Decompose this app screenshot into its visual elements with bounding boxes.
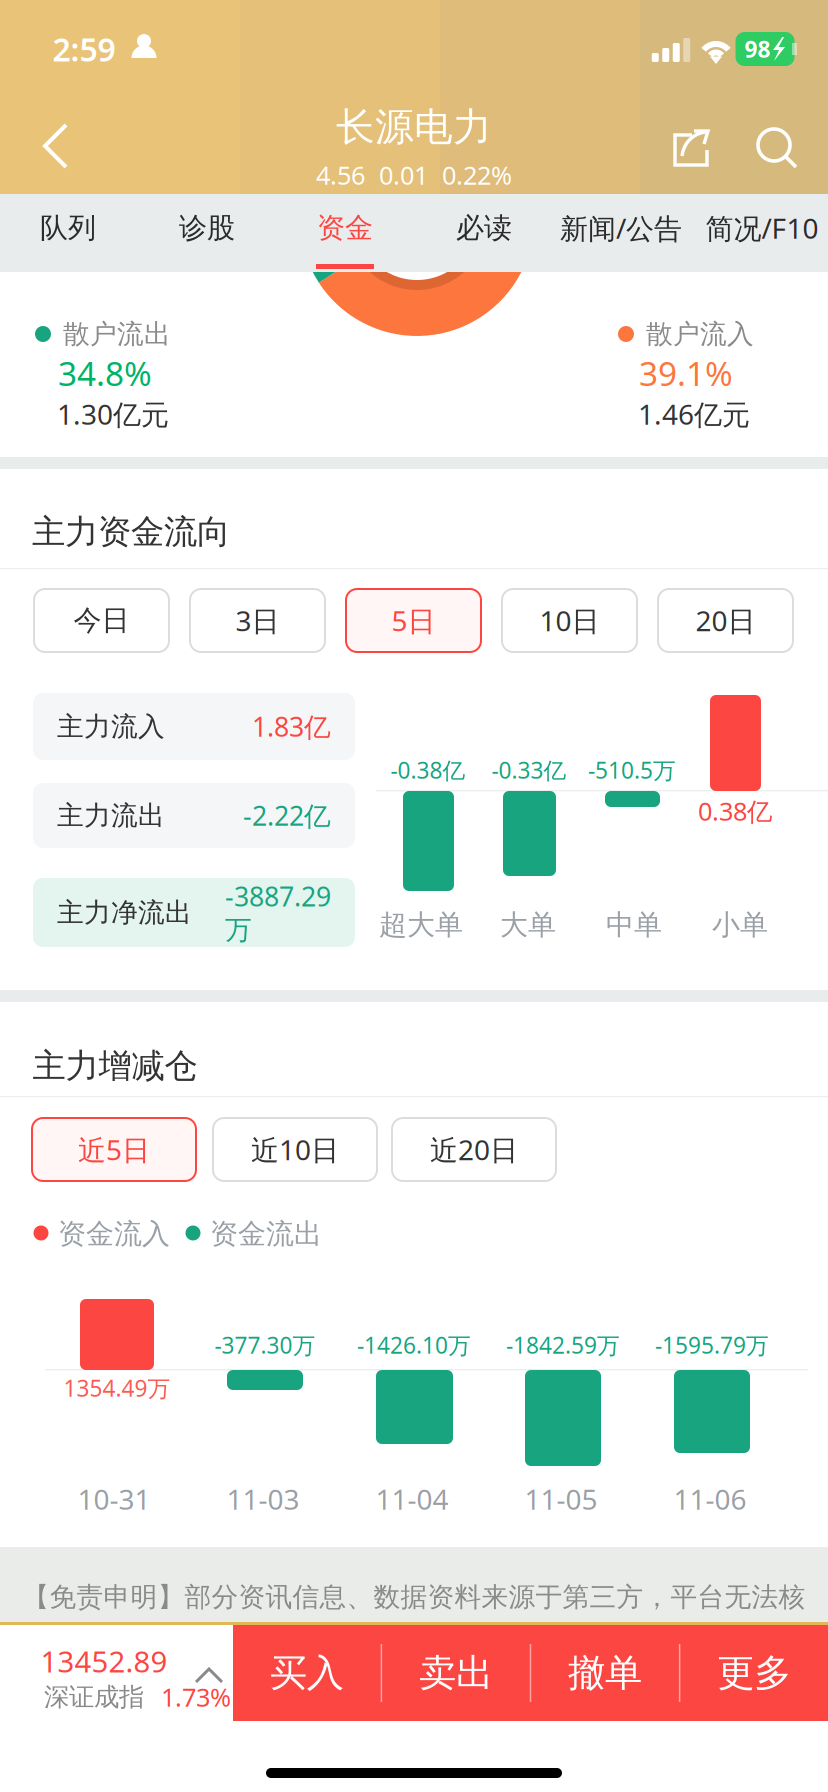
staticText: 10日 — [539, 602, 599, 639]
staticText: 主力流入 — [57, 710, 165, 743]
staticText: 深证成指 — [44, 1681, 144, 1712]
staticText: 5日 — [391, 602, 435, 639]
staticText: 资金流入 — [58, 1217, 170, 1251]
staticText: 主力资金流向 — [32, 511, 230, 552]
staticText: 1.73% — [161, 1680, 231, 1714]
staticText: 资金流出 — [210, 1217, 322, 1251]
staticText: 队列 — [40, 211, 96, 245]
button[interactable]: 诊股 — [179, 193, 235, 263]
staticText: 10-31 — [77, 1480, 150, 1518]
button[interactable]: 3日 — [190, 589, 325, 652]
staticText: 13452.89 — [40, 1641, 167, 1680]
staticText: 1.83亿 — [252, 709, 331, 744]
staticText: 0.38亿 — [698, 794, 772, 828]
staticText: 主力增减仓 — [32, 1045, 197, 1086]
staticText: 34.8% — [58, 351, 152, 395]
staticText: 近20日 — [430, 1131, 518, 1168]
staticText: 小单 — [712, 908, 768, 942]
staticText: -0.33亿 — [491, 755, 566, 785]
staticText: 2:59 — [52, 28, 115, 70]
button[interactable]: 资金 — [317, 193, 373, 263]
staticText: 更多 — [717, 1650, 791, 1696]
staticText: 1.46亿元 — [638, 395, 750, 433]
button[interactable]: 今日 — [34, 589, 169, 652]
staticText: 近10日 — [251, 1131, 339, 1168]
button[interactable]: 新闻/公告 — [560, 193, 682, 263]
staticText: 11-05 — [524, 1480, 597, 1518]
button[interactable]: Search — [737, 108, 817, 188]
staticText: -2.22亿 — [243, 798, 331, 833]
staticText: -0.38亿 — [390, 755, 465, 785]
staticText: -510.5万 — [588, 755, 676, 785]
staticText: 买入 — [270, 1650, 344, 1696]
button[interactable]: Share — [652, 108, 732, 188]
staticText: 【免责申明】部分资讯信息、数据资料来源于第三方，平台无法核 — [22, 1581, 805, 1613]
staticText: 简况/F10 — [705, 209, 818, 247]
staticText: 1354.49万 — [63, 1373, 170, 1403]
button[interactable]: 5日 — [346, 589, 481, 652]
staticText: 卖出 — [419, 1650, 493, 1696]
staticText: 超大单 — [379, 908, 463, 942]
staticText: 1.30亿元 — [57, 395, 169, 433]
button[interactable]: 近10日 — [213, 1118, 377, 1181]
staticText: 11-03 — [226, 1480, 299, 1518]
staticText: 39.1% — [639, 351, 733, 395]
staticText: -1426.10万 — [357, 1330, 471, 1360]
button[interactable]: Back — [14, 102, 102, 190]
button[interactable]: 近5日 — [32, 1118, 196, 1181]
staticText: -377.30万 — [214, 1330, 315, 1360]
staticText: 11-06 — [673, 1480, 746, 1518]
staticText: 散户流出 — [63, 318, 171, 350]
button[interactable]: 撤单 — [531, 1625, 679, 1721]
button[interactable]: 20日 — [658, 589, 793, 652]
staticText: 11-04 — [375, 1480, 448, 1518]
staticText: 散户流入 — [646, 318, 754, 350]
button[interactable]: 10日 — [502, 589, 637, 652]
staticText: 主力流出 — [57, 799, 165, 832]
button[interactable]: 买入 — [233, 1625, 381, 1721]
staticText: 主力净流出 — [57, 896, 192, 929]
staticText: 20日 — [695, 602, 755, 639]
staticText: 必读 — [456, 211, 512, 245]
staticText: 新闻/公告 — [560, 209, 682, 247]
staticText: 诊股 — [179, 211, 235, 245]
staticText: 资金 — [317, 211, 373, 245]
staticText: 98 — [744, 34, 770, 64]
staticText: 3日 — [235, 602, 279, 639]
button[interactable]: 更多 — [680, 1625, 828, 1721]
staticText: -3887.29万 — [225, 878, 331, 947]
staticText: -1595.79万 — [655, 1330, 769, 1360]
staticText: 中单 — [606, 908, 662, 942]
button[interactable]: 简况/F10 — [705, 193, 818, 263]
staticText: 近5日 — [78, 1131, 150, 1168]
staticText: 撤单 — [568, 1650, 642, 1696]
staticText: 大单 — [500, 908, 556, 942]
button[interactable]: 队列 — [40, 193, 96, 263]
staticText: -1842.59万 — [506, 1330, 620, 1360]
staticText: 今日 — [73, 603, 129, 638]
button[interactable]: 近20日 — [392, 1118, 556, 1181]
staticText: 长源电力 — [336, 103, 492, 151]
button[interactable]: 必读 — [456, 193, 512, 263]
button[interactable]: 卖出 — [382, 1625, 530, 1721]
staticText: 4.56 0.01 0.22% — [316, 158, 512, 192]
